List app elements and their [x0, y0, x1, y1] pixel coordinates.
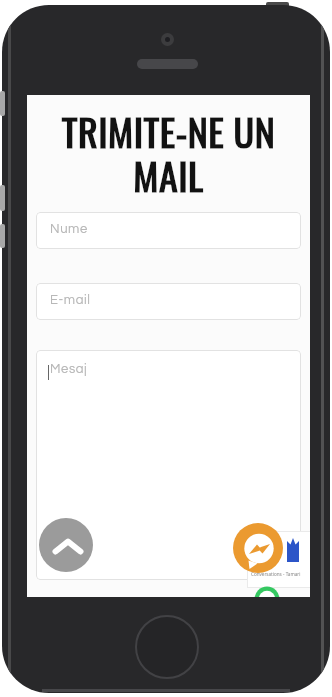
button[interactable]: Nume [36, 212, 301, 249]
button[interactable] [233, 523, 283, 573]
staticText: Nume [50, 222, 88, 235]
button[interactable]: Mesaj [36, 350, 301, 580]
button[interactable] [39, 518, 93, 572]
button[interactable]: E-mail [36, 283, 301, 320]
staticText: E-mail [50, 293, 91, 306]
staticText: Conversations - Tamari [251, 571, 301, 577]
staticText: Mesaj [50, 362, 88, 375]
staticText: TRIMITE-NE UN MAIL [27, 103, 310, 203]
